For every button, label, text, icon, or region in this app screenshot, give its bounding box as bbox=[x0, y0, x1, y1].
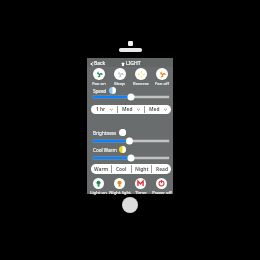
button[interactable]: Sleep bbox=[108, 68, 131, 86]
staticText: Speed bbox=[93, 88, 107, 94]
button[interactable]: Med bbox=[145, 105, 171, 114]
staticText: Cool bbox=[116, 166, 127, 173]
button[interactable]: Reverse bbox=[129, 68, 152, 86]
staticText: Fan on bbox=[92, 80, 106, 86]
staticText: Brightness bbox=[93, 130, 117, 136]
staticText: Fan off bbox=[155, 80, 169, 86]
staticText: Read bbox=[156, 166, 168, 173]
staticText: Back bbox=[94, 60, 106, 67]
button[interactable]: Colour temperature slider bbox=[92, 154, 170, 162]
staticText: Power off bbox=[152, 189, 172, 195]
button[interactable]: Back bbox=[89, 60, 107, 67]
button[interactable]: Med bbox=[118, 105, 144, 114]
button[interactable]: Power off bbox=[150, 178, 173, 195]
button[interactable]: Fan on bbox=[87, 68, 110, 86]
button[interactable]: Timer bbox=[129, 178, 152, 195]
staticText: Night bbox=[135, 166, 149, 173]
button[interactable]: Read bbox=[152, 164, 171, 174]
staticText: Warm bbox=[94, 166, 109, 173]
button[interactable]: Fan off bbox=[150, 68, 173, 86]
staticText: 1 hr bbox=[96, 106, 106, 113]
button[interactable]: Night bbox=[132, 164, 151, 174]
button[interactable]: Speed slider bbox=[92, 93, 170, 101]
button[interactable]: Night light bbox=[108, 178, 131, 195]
staticText: LIGHT bbox=[126, 60, 141, 67]
staticText: Timer bbox=[135, 189, 147, 195]
button[interactable]: Warm bbox=[91, 164, 111, 174]
button[interactable]: Light on bbox=[87, 178, 110, 195]
button[interactable]: 1 hr bbox=[91, 105, 117, 114]
staticText: Reverse bbox=[133, 80, 149, 86]
button[interactable]: Brightness slider bbox=[92, 137, 170, 145]
staticText: Med bbox=[122, 106, 133, 113]
staticText: Sleep bbox=[114, 80, 125, 86]
button[interactable]: Home bbox=[122, 197, 138, 213]
staticText: Cool Warm bbox=[93, 147, 117, 153]
button[interactable]: Cool bbox=[112, 164, 131, 174]
staticText: Night light bbox=[109, 189, 131, 195]
staticText: Light on bbox=[90, 189, 107, 195]
staticText: Med bbox=[149, 106, 160, 113]
